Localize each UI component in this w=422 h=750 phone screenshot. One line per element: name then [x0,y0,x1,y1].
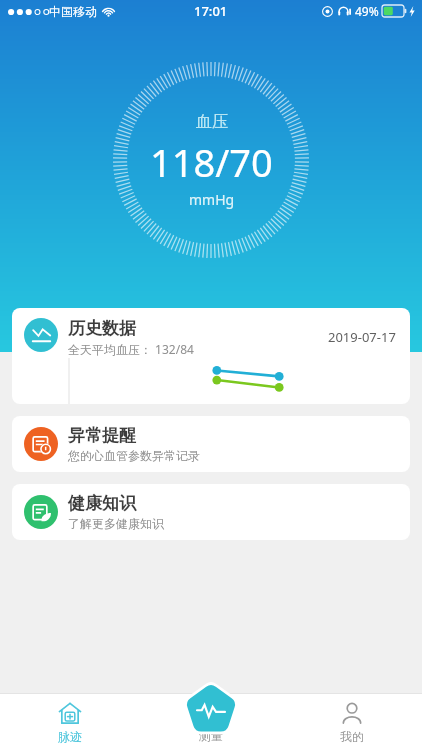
staticText: 49% [355,3,379,19]
button[interactable]: 我的 [281,694,422,750]
staticText: 了解更多健康知识 [68,516,164,531]
staticText: 血压 [196,112,228,132]
button[interactable]: 历史数据 [12,308,410,404]
staticText: 健康知识 [68,493,136,514]
button[interactable]: 测量 [181,680,241,740]
staticText: 全天平均血压： 132/84 [68,341,194,357]
staticText: 17:01 [194,2,228,20]
staticText: 异常提醒 [68,425,136,446]
staticText: 中国移动 [49,4,97,19]
staticText: 我的 [340,729,364,744]
staticText: 测量 [199,728,223,743]
staticText: 脉迹 [58,729,82,744]
button[interactable]: 健康知识 [12,484,410,540]
staticText: 历史数据 [68,318,136,339]
staticText: 2019-07-17 [328,328,396,346]
staticText: 118/70 [150,136,273,188]
button[interactable]: 异常提醒 [12,416,410,472]
button[interactable]: 脉迹 [0,694,140,750]
staticText: mmHg [189,190,235,209]
staticText: 您的心血管参数异常记录 [68,448,200,463]
